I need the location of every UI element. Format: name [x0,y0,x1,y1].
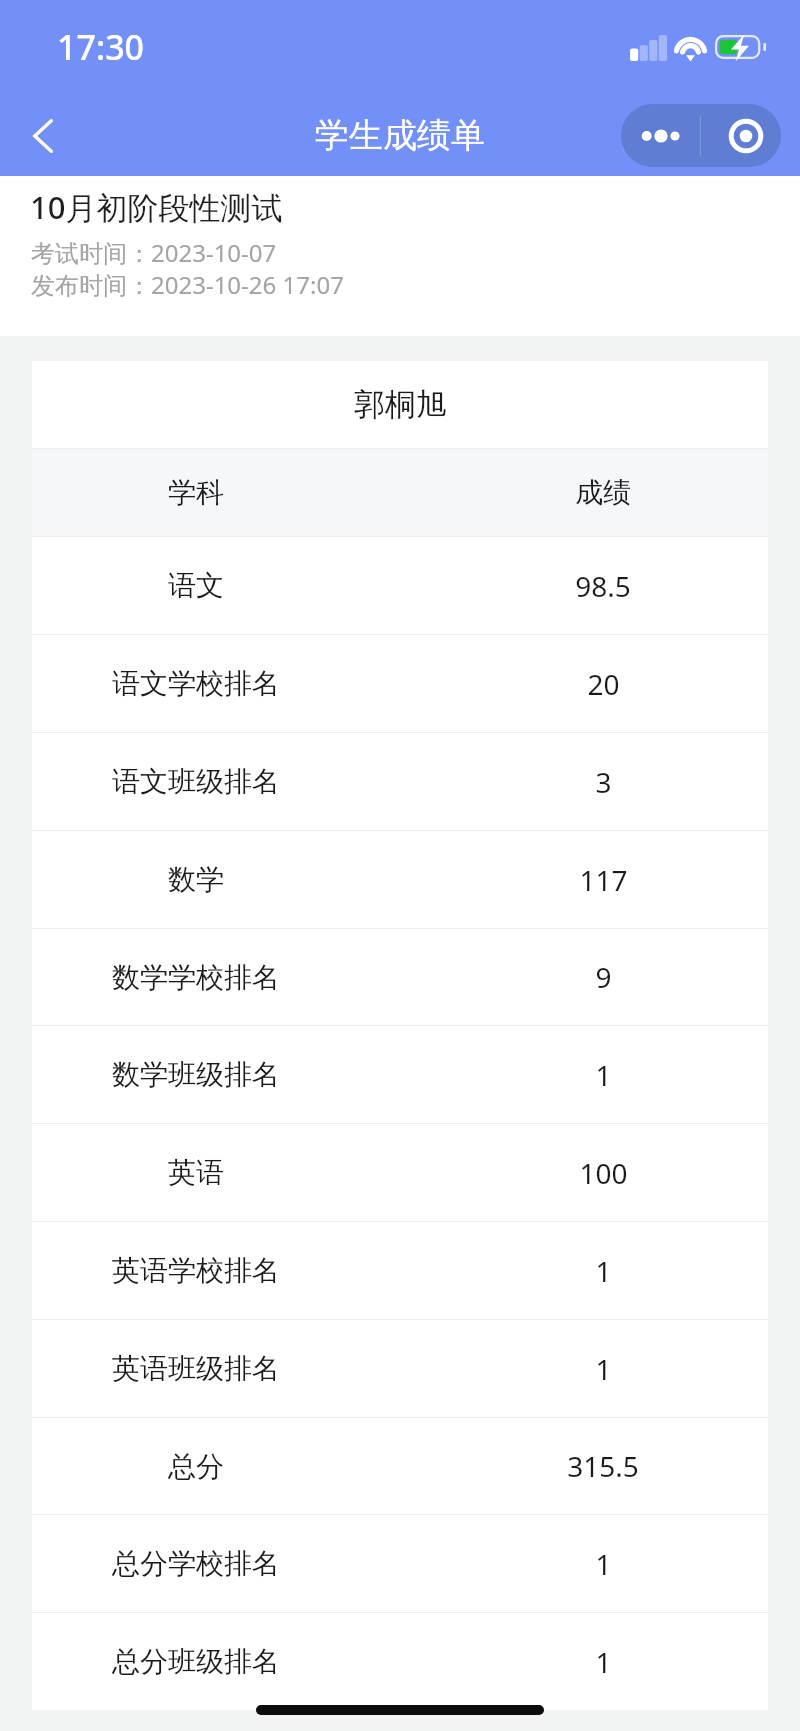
staticText: 总分学校排名 [112,1546,280,1581]
button[interactable]: 语文班级排名 [32,733,768,830]
staticText: 117 [579,861,628,899]
staticText: 1 [595,1252,612,1290]
staticText: 3 [595,763,612,801]
staticText: 郭桐旭 [354,385,447,424]
button[interactable]: 总分班级排名 [32,1613,768,1710]
staticText: 总分 [168,1449,224,1484]
staticText: 数学学校排名 [112,960,280,995]
button[interactable]: 数学班级排名 [32,1026,768,1123]
staticText: 考试时间：2023-10-07 [31,236,277,269]
staticText: 数学班级排名 [112,1057,280,1092]
staticText: 英语学校排名 [112,1253,280,1288]
button[interactable]: 总分学校排名 [32,1515,768,1612]
button[interactable]: Close [701,104,781,167]
button[interactable]: 总分 [32,1418,768,1514]
button[interactable]: Back [9,95,77,176]
staticText: 发布时间：2023-10-26 17:07 [31,268,344,301]
button[interactable]: More [621,104,700,167]
staticText: 1 [595,1350,612,1388]
staticText: 成绩 [575,475,631,510]
staticText: 100 [579,1154,628,1192]
staticText: 10月初阶段性测试 [30,186,283,228]
staticText: 17:30 [57,24,145,70]
staticText: 1 [595,1643,612,1681]
button[interactable]: 语文 [32,537,768,634]
staticText: 语文班级排名 [112,764,280,799]
button[interactable]: 数学学校排名 [32,929,768,1025]
staticText: 98.5 [575,567,631,605]
staticText: 语文 [168,568,224,603]
staticText: 1 [595,1056,612,1094]
staticText: 学科 [168,475,224,510]
staticText: 英语班级排名 [112,1351,280,1386]
staticText: 20 [587,665,620,703]
staticText: 总分班级排名 [112,1644,280,1679]
staticText: 9 [595,958,612,996]
button[interactable]: 数学 [32,831,768,928]
staticText: 1 [595,1545,612,1583]
button[interactable]: 英语 [32,1124,768,1221]
staticText: 数学 [168,862,224,897]
staticText: 英语 [168,1155,224,1190]
button[interactable]: 语文学校排名 [32,635,768,732]
staticText: 315.5 [567,1447,639,1485]
button[interactable]: 英语班级排名 [32,1320,768,1417]
staticText: 语文学校排名 [112,666,280,701]
staticText: 学生成绩单 [315,114,485,157]
button[interactable]: 英语学校排名 [32,1222,768,1319]
button[interactable]: 郭桐旭 [32,361,768,448]
